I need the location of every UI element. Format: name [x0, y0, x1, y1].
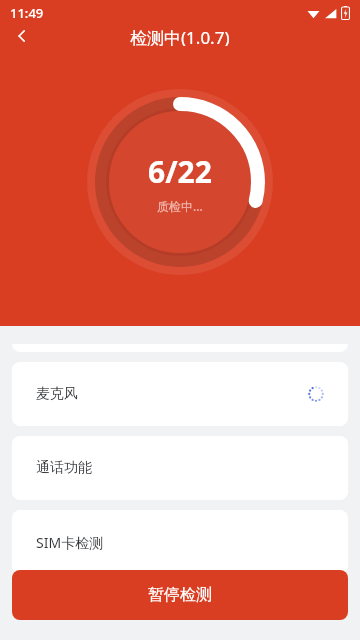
- button[interactable]: 通话功能: [12, 436, 348, 500]
- button[interactable]: 暂停检测: [12, 570, 348, 620]
- staticText: 暂停检测: [148, 585, 212, 605]
- staticText: 通话功能: [36, 459, 92, 477]
- staticText: 质检中...: [157, 198, 203, 214]
- staticText: 6/22: [148, 151, 212, 192]
- staticText: 11:49: [10, 4, 44, 22]
- staticText: 麦克风: [36, 385, 78, 403]
- staticText: SIM卡检测: [36, 533, 104, 552]
- button[interactable]: Back: [0, 26, 44, 46]
- button[interactable]: 麦克风: [12, 362, 348, 426]
- button[interactable]: SIM卡检测: [12, 510, 348, 574]
- staticText: 检测中(1.0.7): [130, 26, 230, 46]
